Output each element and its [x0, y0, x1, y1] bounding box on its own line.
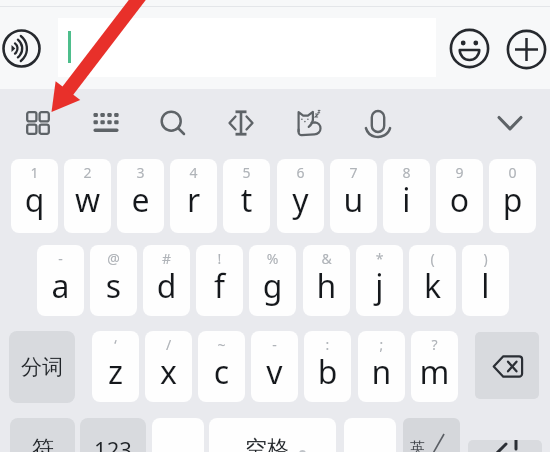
button[interactable]: Backspace [475, 332, 539, 399]
staticText: : [304, 335, 351, 354]
staticText: p [489, 178, 536, 222]
button[interactable]: 5 [223, 159, 270, 233]
button[interactable]: 英 [403, 418, 460, 452]
staticText: ( [409, 249, 456, 268]
button[interactable]: ~ [198, 331, 245, 402]
button[interactable]: @ [90, 245, 137, 316]
button[interactable]: 8 [383, 159, 430, 233]
staticText: e [117, 178, 164, 222]
button[interactable]: Keyboard layout [87, 104, 125, 142]
staticText: 6 [277, 163, 324, 182]
staticText: 8 [383, 163, 430, 182]
button[interactable]: Grid [19, 104, 57, 142]
button[interactable]: ) [462, 245, 509, 316]
staticText: 7 [330, 163, 377, 182]
staticText: d [143, 264, 190, 308]
button[interactable]: 空格 [209, 418, 336, 452]
staticText: 4 [170, 163, 217, 182]
button[interactable]: # [143, 245, 190, 316]
button[interactable]: / [145, 331, 192, 402]
staticText: g [249, 264, 296, 308]
button[interactable]: Move cursor [222, 104, 260, 142]
staticText: / [145, 335, 192, 354]
button[interactable]: - [37, 245, 84, 316]
button[interactable]: ( [409, 245, 456, 316]
staticText: l [462, 264, 509, 308]
staticText: 空格 [245, 435, 289, 452]
button[interactable]: Stickers [291, 104, 329, 142]
staticText: * [356, 249, 403, 268]
button[interactable]: ; [358, 331, 405, 402]
button[interactable]: Search [154, 104, 192, 142]
staticText: s [90, 264, 137, 308]
staticText: f [196, 264, 243, 308]
button[interactable]: * [356, 245, 403, 316]
staticText: x [145, 350, 192, 394]
staticText: @ [90, 249, 137, 268]
staticText: % [249, 249, 296, 268]
button[interactable]: 6 [277, 159, 324, 233]
button[interactable]: : [304, 331, 351, 402]
staticText: v [251, 350, 298, 394]
button[interactable]: Emoji [449, 28, 490, 69]
staticText: 9 [436, 163, 483, 182]
button[interactable]: Enter [468, 440, 542, 452]
staticText: r [170, 178, 217, 222]
button[interactable]: 分词 [9, 331, 75, 403]
button[interactable]: 7 [330, 159, 377, 233]
staticText: & [303, 249, 350, 268]
staticText: 123 [94, 434, 132, 452]
staticText: - [251, 335, 298, 354]
staticText: ? [411, 335, 458, 354]
button[interactable]: ‘ [92, 331, 139, 402]
staticText: q [11, 178, 58, 222]
staticText: - [37, 249, 84, 268]
button[interactable]: 符 [10, 418, 75, 452]
staticText: ; [358, 335, 405, 354]
staticText: w [64, 178, 111, 222]
staticText: 分词 [21, 354, 63, 380]
button[interactable]: Voice input [359, 104, 397, 142]
button[interactable]: 9 [436, 159, 483, 233]
staticText: a [37, 264, 84, 308]
button[interactable]: 123 [80, 418, 146, 452]
staticText: 符 [32, 435, 54, 452]
button[interactable]: Add [506, 29, 547, 70]
button[interactable]: 2 [64, 159, 111, 233]
button[interactable]: % [249, 245, 296, 316]
staticText: n [358, 350, 405, 394]
button[interactable]: ! [196, 245, 243, 316]
staticText: 英 [410, 439, 425, 452]
staticText: i [383, 178, 430, 222]
button[interactable]: Hide keyboard [491, 104, 529, 142]
staticText: h [303, 264, 350, 308]
staticText: o [436, 178, 483, 222]
staticText: 0 [489, 163, 536, 182]
staticText: c [198, 350, 245, 394]
staticText: 3 [117, 163, 164, 182]
button[interactable] [58, 18, 436, 77]
staticText: ) [462, 249, 509, 268]
button[interactable]: Sound [1, 28, 42, 69]
staticText: # [143, 249, 190, 268]
staticText: b [304, 350, 351, 394]
button[interactable]: 1 [11, 159, 58, 233]
staticText: ! [196, 249, 243, 268]
staticText: j [356, 264, 403, 308]
button[interactable]: 3 [117, 159, 164, 233]
button[interactable]: & [303, 245, 350, 316]
staticText: k [409, 264, 456, 308]
button[interactable]: 0 [489, 159, 536, 233]
staticText: 1 [11, 163, 58, 182]
staticText: 5 [223, 163, 270, 182]
staticText: ‘ [92, 335, 139, 354]
button[interactable]: - [251, 331, 298, 402]
button[interactable]: ? [411, 331, 458, 402]
staticText: u [330, 178, 377, 222]
staticText: m [411, 350, 458, 394]
button[interactable]: 4 [170, 159, 217, 233]
